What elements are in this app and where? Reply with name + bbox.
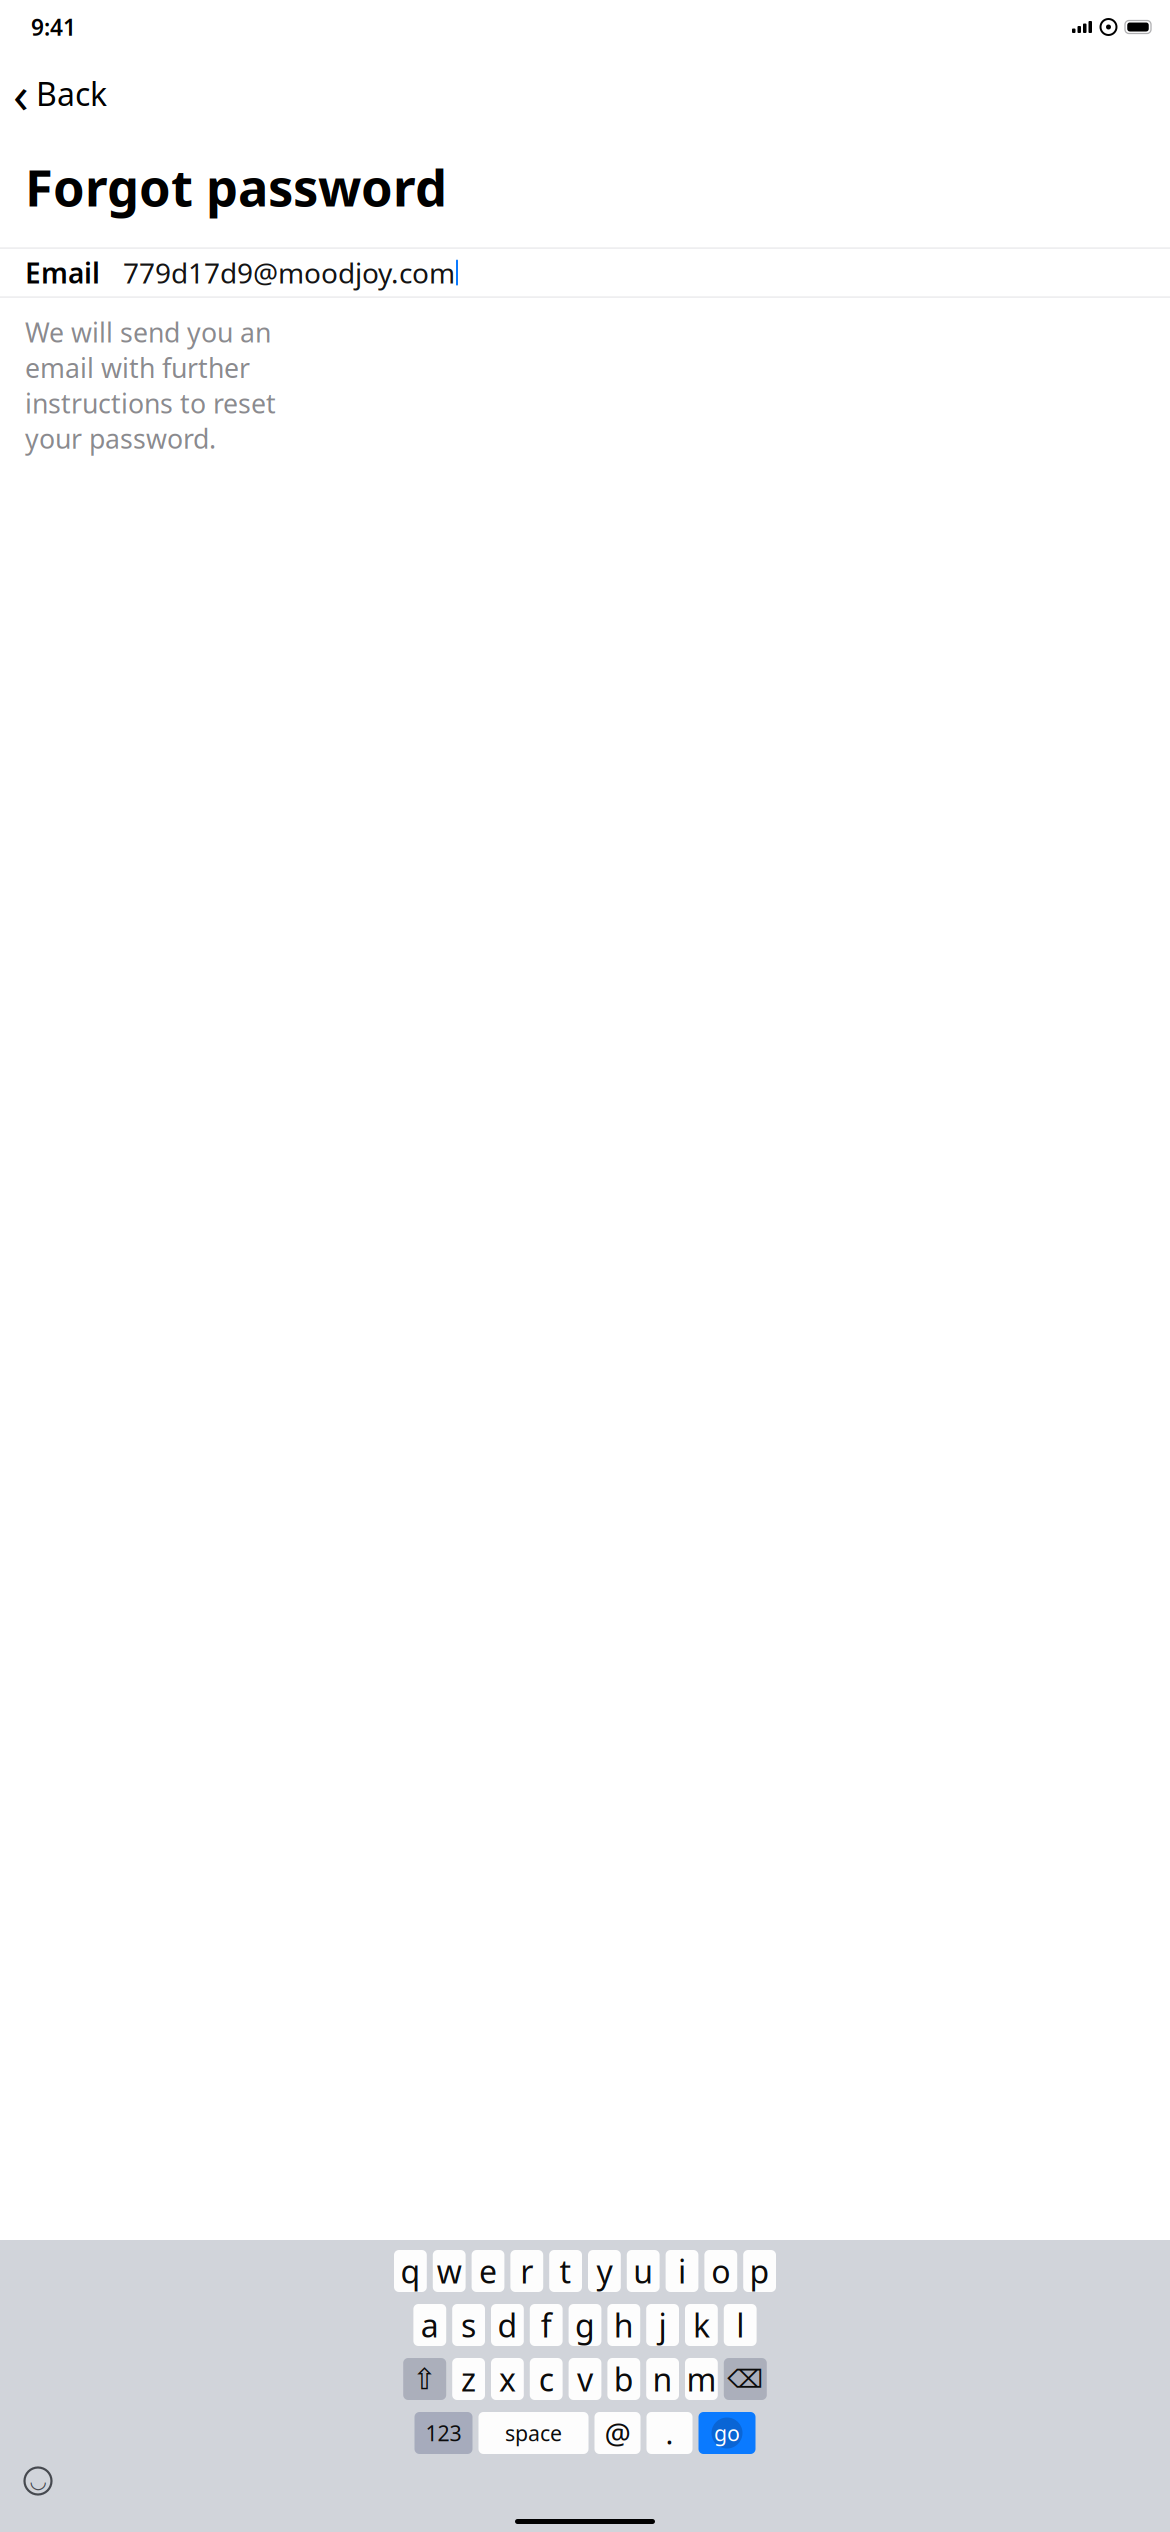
staticText: p [750, 2250, 770, 2292]
button[interactable]: t [549, 2250, 582, 2292]
button[interactable]: c [530, 2358, 563, 2400]
button[interactable]: v [569, 2358, 601, 2400]
staticText: i [678, 2250, 686, 2292]
staticText: ‹ [13, 60, 29, 127]
button[interactable]: m [685, 2358, 718, 2400]
button[interactable]: k [685, 2304, 718, 2346]
button[interactable]: . [646, 2412, 692, 2454]
staticText: s [461, 2304, 476, 2346]
staticText: q [400, 2250, 420, 2292]
button[interactable]: u [627, 2250, 660, 2292]
staticText: r [520, 2250, 533, 2292]
staticText: ⇧ [412, 2362, 437, 2396]
button[interactable]: h [607, 2304, 640, 2346]
button[interactable]: y [588, 2250, 621, 2292]
button[interactable]: o [704, 2250, 737, 2292]
staticText: go [714, 2419, 740, 2447]
staticText: h [614, 2304, 634, 2346]
staticText: . [665, 2413, 673, 2452]
staticText: m [686, 2358, 716, 2400]
staticText: 123 [425, 2419, 461, 2447]
button[interactable]: Email [0, 249, 1170, 297]
staticText: a [421, 2304, 439, 2346]
button[interactable]: Shift [403, 2358, 446, 2400]
staticText: z [461, 2358, 476, 2400]
button[interactable]: e [472, 2250, 504, 2292]
staticText: g [575, 2304, 595, 2346]
staticText: We will send you an email with further i… [25, 315, 276, 456]
staticText: Back [36, 72, 107, 115]
staticText: ◡ [30, 2470, 45, 2492]
button[interactable]: p [743, 2250, 776, 2292]
staticText: d [497, 2304, 517, 2346]
staticText: b [614, 2358, 634, 2400]
staticText: Forgot password [25, 153, 447, 221]
staticText: space [505, 2419, 562, 2447]
button[interactable]: x [491, 2358, 524, 2400]
button[interactable]: @ [594, 2412, 640, 2454]
staticText: o [711, 2250, 730, 2292]
button[interactable]: b [607, 2358, 640, 2400]
staticText: n [653, 2358, 673, 2400]
staticText: e [479, 2250, 497, 2292]
button[interactable]: Delete [724, 2358, 767, 2400]
staticText: j [659, 2304, 667, 2346]
staticText: f [541, 2304, 552, 2346]
staticText: x [499, 2358, 516, 2400]
staticText: l [736, 2304, 744, 2346]
button[interactable]: go [698, 2412, 755, 2454]
button[interactable]: d [491, 2304, 524, 2346]
button[interactable]: s [452, 2304, 485, 2346]
button[interactable]: Emoji keyboard [16, 2462, 60, 2500]
button[interactable]: n [646, 2358, 679, 2400]
staticText: c [539, 2358, 554, 2400]
staticText: Email [25, 254, 100, 291]
button[interactable]: ‹ [0, 56, 107, 131]
button[interactable]: space [478, 2412, 588, 2454]
staticText: @ [604, 2413, 630, 2452]
button[interactable]: a [413, 2304, 446, 2346]
button[interactable]: q [394, 2250, 427, 2292]
button[interactable]: z [452, 2358, 485, 2400]
staticText: v [577, 2358, 593, 2400]
button[interactable]: g [569, 2304, 601, 2346]
button[interactable]: j [646, 2304, 679, 2346]
staticText: t [560, 2250, 572, 2292]
staticText: w [437, 2250, 462, 2292]
staticText: 779d17d9@moodjoy.com [123, 254, 455, 291]
button[interactable]: r [510, 2250, 543, 2292]
button[interactable]: 123 [414, 2412, 472, 2454]
staticText: ⌫ [727, 2365, 763, 2393]
button[interactable]: i [666, 2250, 698, 2292]
button[interactable]: w [433, 2250, 466, 2292]
staticText: 9:41 [31, 12, 76, 42]
staticText: y [596, 2250, 612, 2292]
button[interactable]: f [530, 2304, 563, 2346]
staticText: u [633, 2250, 653, 2292]
button[interactable]: l [724, 2304, 757, 2346]
staticText: k [693, 2304, 710, 2346]
